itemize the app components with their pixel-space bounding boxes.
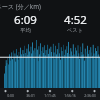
- staticText: 1:56:16: [64, 93, 76, 98]
- staticText: 平均: [20, 27, 31, 34]
- staticText: ベスト: [67, 27, 83, 34]
- staticText: 36:01: [26, 93, 35, 98]
- staticText: ペース (分／km): [0, 2, 41, 10]
- button[interactable]: 4:52: [50, 12, 100, 34]
- button[interactable]: Pace chart: [0, 38, 100, 88]
- staticText: 6:09: [14, 12, 37, 27]
- staticText: 4:52: [64, 12, 87, 27]
- button[interactable]: ペース (分／km): [0, 0, 100, 12]
- staticText: 0:00: [7, 93, 14, 98]
- button[interactable]: 6:09: [0, 12, 50, 34]
- staticText: 2:36:03: [84, 93, 96, 98]
- staticText: 1:11:45: [44, 93, 56, 98]
